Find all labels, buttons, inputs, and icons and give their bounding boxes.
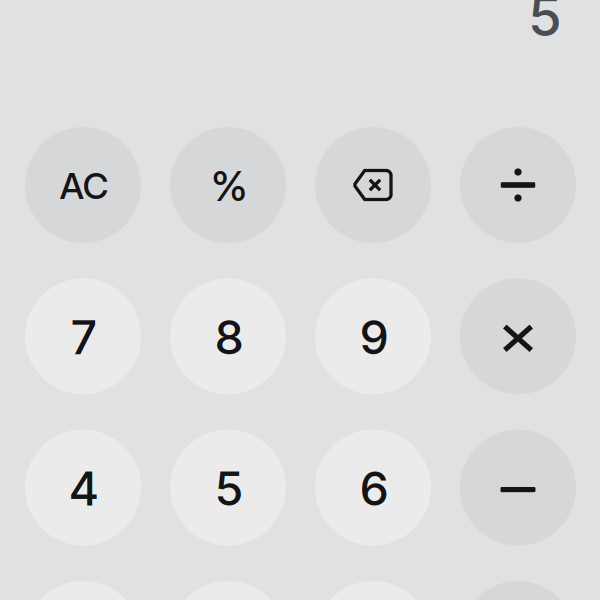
button[interactable]: 3 xyxy=(315,581,431,600)
button[interactable]: % xyxy=(170,127,286,243)
button[interactable]: Multiply xyxy=(460,278,576,394)
staticText: 6 xyxy=(359,460,388,517)
button[interactable]: AC xyxy=(25,127,141,243)
button[interactable]: 5 xyxy=(170,430,286,546)
staticText: 5 xyxy=(528,0,562,49)
staticText: 9 xyxy=(359,309,388,366)
button[interactable]: 4 xyxy=(25,430,141,546)
button[interactable]: 2 xyxy=(170,581,286,600)
button[interactable]: 8 xyxy=(170,278,286,394)
staticText: AC xyxy=(59,164,108,208)
button[interactable]: 7 xyxy=(25,278,141,394)
button[interactable]: Add xyxy=(460,581,576,600)
button[interactable]: Delete xyxy=(315,127,431,243)
button[interactable]: Subtract xyxy=(460,430,576,546)
button[interactable]: 6 xyxy=(315,430,431,546)
button[interactable]: 9 xyxy=(315,278,431,394)
staticText: 4 xyxy=(68,460,99,517)
staticText: 5 xyxy=(214,460,243,517)
button[interactable]: Divide xyxy=(460,127,576,243)
staticText: % xyxy=(211,161,247,211)
staticText: 8 xyxy=(214,309,243,366)
button[interactable]: 1 xyxy=(25,581,141,600)
staticText: 7 xyxy=(70,309,97,366)
